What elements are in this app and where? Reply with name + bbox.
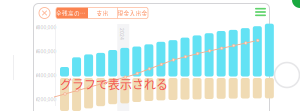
staticText: 現金入出金: [117, 9, 147, 17]
button[interactable]: Menu: [255, 8, 266, 16]
staticText: ¥800,000: [35, 25, 56, 30]
staticText: ¥400,000: [35, 73, 56, 78]
staticText: 支出: [96, 9, 108, 17]
staticText: グラフで表示される: [60, 75, 168, 93]
staticText: 2024: [116, 31, 128, 37]
staticText: ¥200,000: [35, 97, 56, 102]
button[interactable]: 全残高の推移: [56, 7, 88, 18]
button[interactable]: Close: [37, 6, 51, 20]
staticText: 全残高の推移: [56, 9, 88, 17]
button[interactable]: 現金入出金: [117, 7, 148, 18]
staticText: ¥600,000: [35, 49, 56, 54]
button[interactable]: 支出: [88, 7, 117, 18]
